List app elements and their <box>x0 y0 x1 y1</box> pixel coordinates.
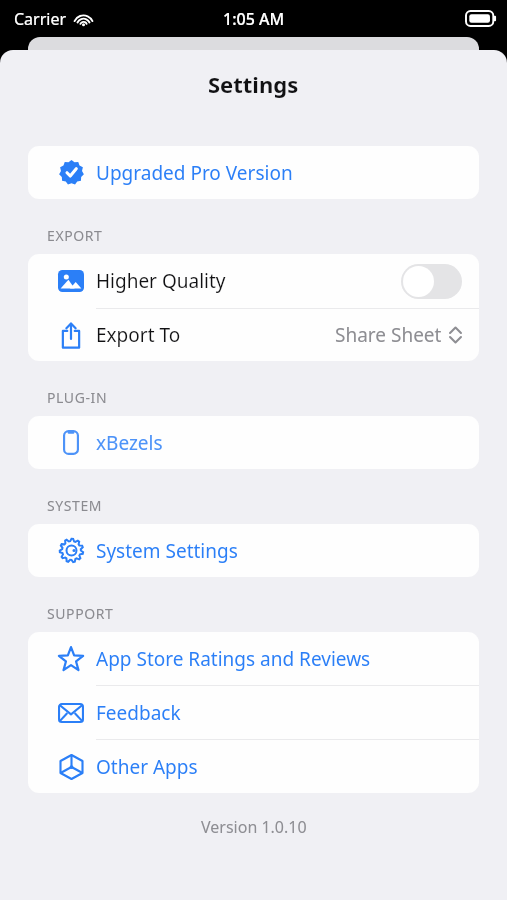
button[interactable]: xBezels <box>28 416 479 469</box>
button[interactable]: Feedback <box>28 686 479 739</box>
staticText: 1:05 AM <box>223 8 285 30</box>
staticText: Higher Quality <box>96 268 226 294</box>
button[interactable]: App Store Ratings and Reviews <box>28 632 479 685</box>
staticText: EXPORT <box>47 226 103 245</box>
staticText: Version 1.0.10 <box>201 816 307 838</box>
other: Change export destination <box>449 325 462 345</box>
staticText: App Store Ratings and Reviews <box>96 646 371 672</box>
staticText: SYSTEM <box>47 496 103 515</box>
staticText: Feedback <box>96 700 181 726</box>
button[interactable]: Upgraded Pro Version <box>28 146 479 199</box>
staticText: PLUG-IN <box>47 388 108 407</box>
staticText: Export To <box>96 322 181 348</box>
staticText: Carrier <box>14 8 67 30</box>
button[interactable]: Higher Quality <box>28 254 479 308</box>
staticText: System Settings <box>96 538 238 564</box>
button[interactable]: Export To <box>28 309 479 361</box>
staticText: Settings <box>208 69 299 99</box>
staticText: Other Apps <box>96 754 198 780</box>
staticText: Share Sheet <box>335 322 442 348</box>
staticText: Upgraded Pro Version <box>96 160 293 186</box>
button[interactable]: Other Apps <box>28 740 479 793</box>
button[interactable]: Higher Quality switch, off <box>401 264 462 299</box>
button[interactable]: System Settings <box>28 524 479 577</box>
staticText: xBezels <box>96 430 163 456</box>
staticText: SUPPORT <box>47 604 114 623</box>
